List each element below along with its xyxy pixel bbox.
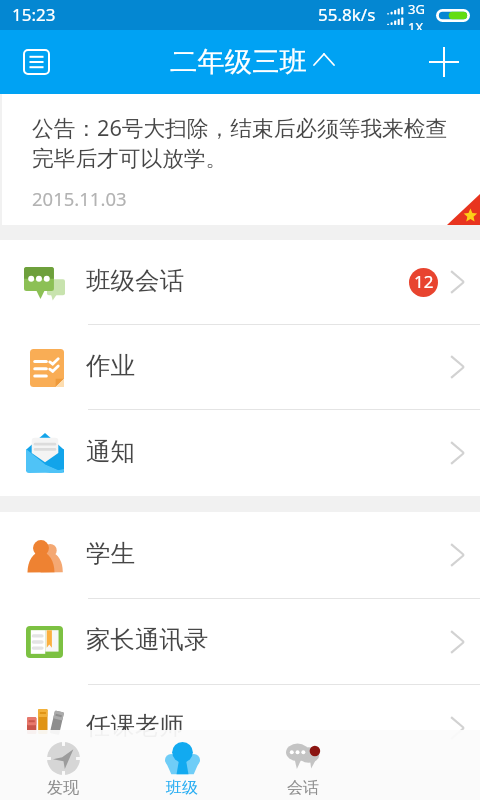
staticText: 15:23 (12, 3, 56, 26)
button[interactable]: Add (420, 38, 468, 86)
staticText: 发现 (47, 778, 79, 798)
staticText: 2015.11.03 (32, 186, 127, 211)
staticText: 学生 (86, 538, 135, 569)
button[interactable]: 班级 (122, 730, 242, 800)
staticText: 作业 (86, 350, 135, 381)
button[interactable]: 通知 (0, 410, 480, 496)
button[interactable]: 作业 (0, 325, 480, 409)
button[interactable]: 公告：26号大扫除，结束后必须等我来检查完毕后才可以放学。 (2, 94, 480, 225)
staticText: 3G (408, 0, 425, 18)
button[interactable]: 会话 (243, 730, 363, 800)
button[interactable]: 任课老师 (0, 685, 480, 770)
staticText: 班级 (166, 778, 198, 798)
staticText: 会话 (287, 778, 319, 798)
button[interactable]: 学生 (0, 512, 480, 598)
staticText: 家长通讯录 (86, 624, 209, 655)
button[interactable]: 家长通讯录 (0, 599, 480, 684)
button[interactable]: 发现 (3, 730, 123, 800)
staticText: 二年级三班 (170, 45, 307, 80)
button[interactable]: Menu (12, 38, 60, 86)
staticText: 12 (414, 270, 434, 293)
staticText: 通知 (86, 436, 135, 467)
staticText: 1X (408, 18, 424, 30)
staticText: 55.8k/s (318, 3, 376, 26)
button[interactable]: 班级会话 (0, 240, 480, 324)
button[interactable]: 二年级三班 (170, 45, 334, 80)
staticText: 公告：26号大扫除，结束后必须等我来检查完毕后才可以放学。 (32, 113, 453, 173)
staticText: 班级会话 (86, 265, 184, 296)
staticText: 任课老师 (86, 710, 184, 741)
